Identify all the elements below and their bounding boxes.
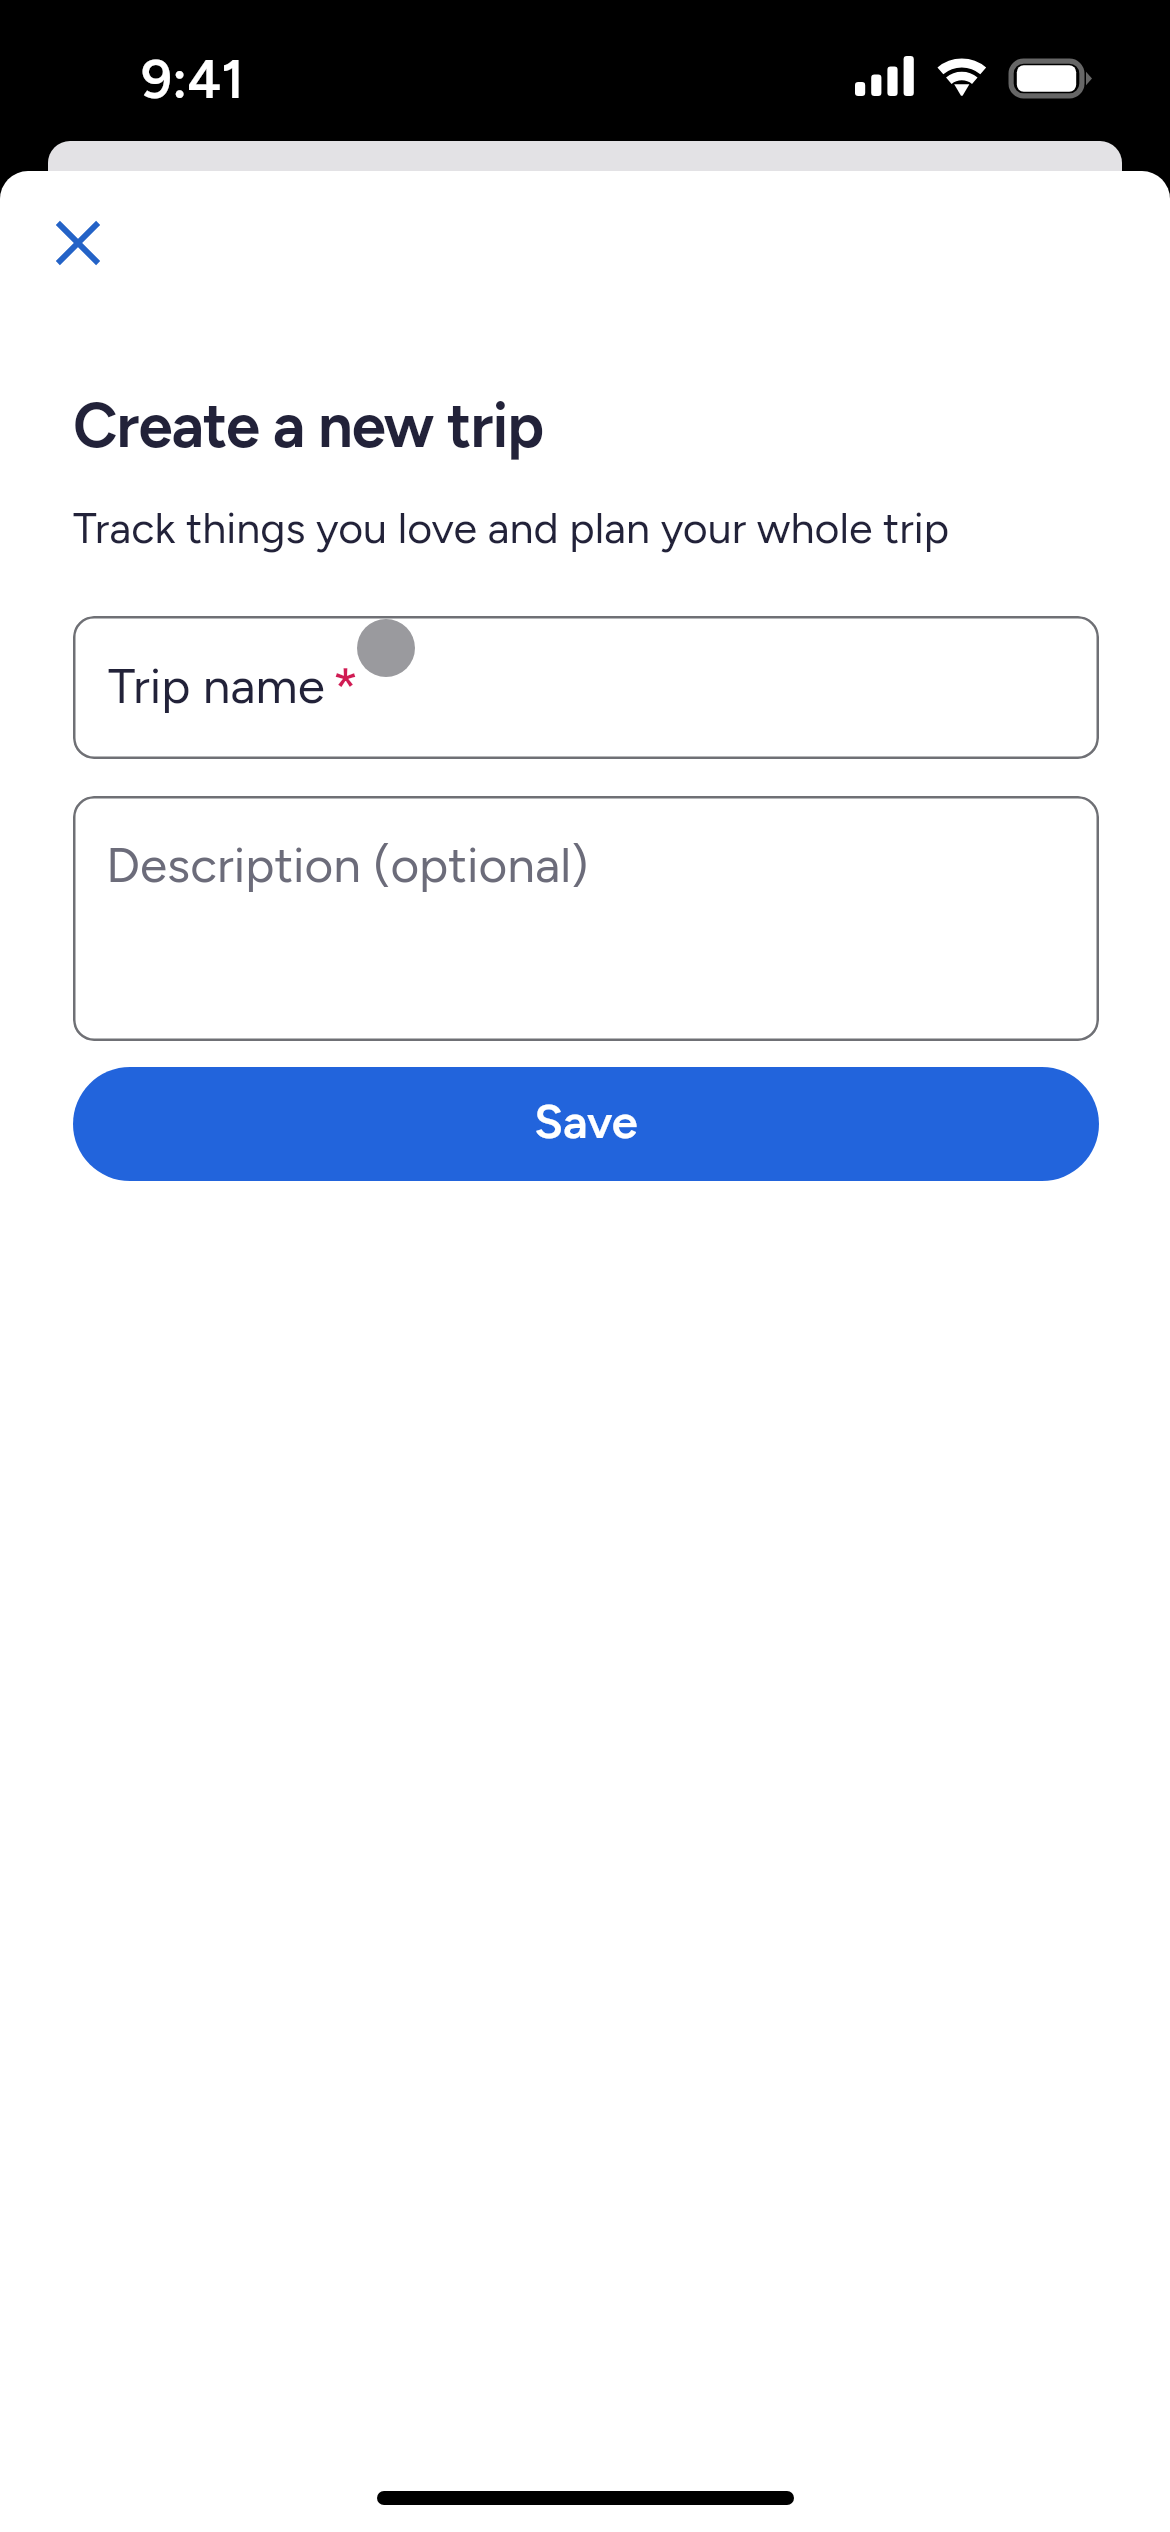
staticText: Trip name [108,656,325,715]
button[interactable]: Trip name [73,616,1099,759]
staticText: 9:41 [141,47,244,112]
staticText: * [332,656,359,723]
staticText: Create a new trip [73,389,544,463]
staticText: Description (optional) [106,835,589,894]
staticText: Save [534,1093,638,1149]
button[interactable]: Save [73,1067,1099,1181]
button[interactable]: Close [26,191,130,295]
button[interactable]: Description (optional) [73,796,1099,1041]
staticText: Track things you love and plan your whol… [73,502,950,554]
